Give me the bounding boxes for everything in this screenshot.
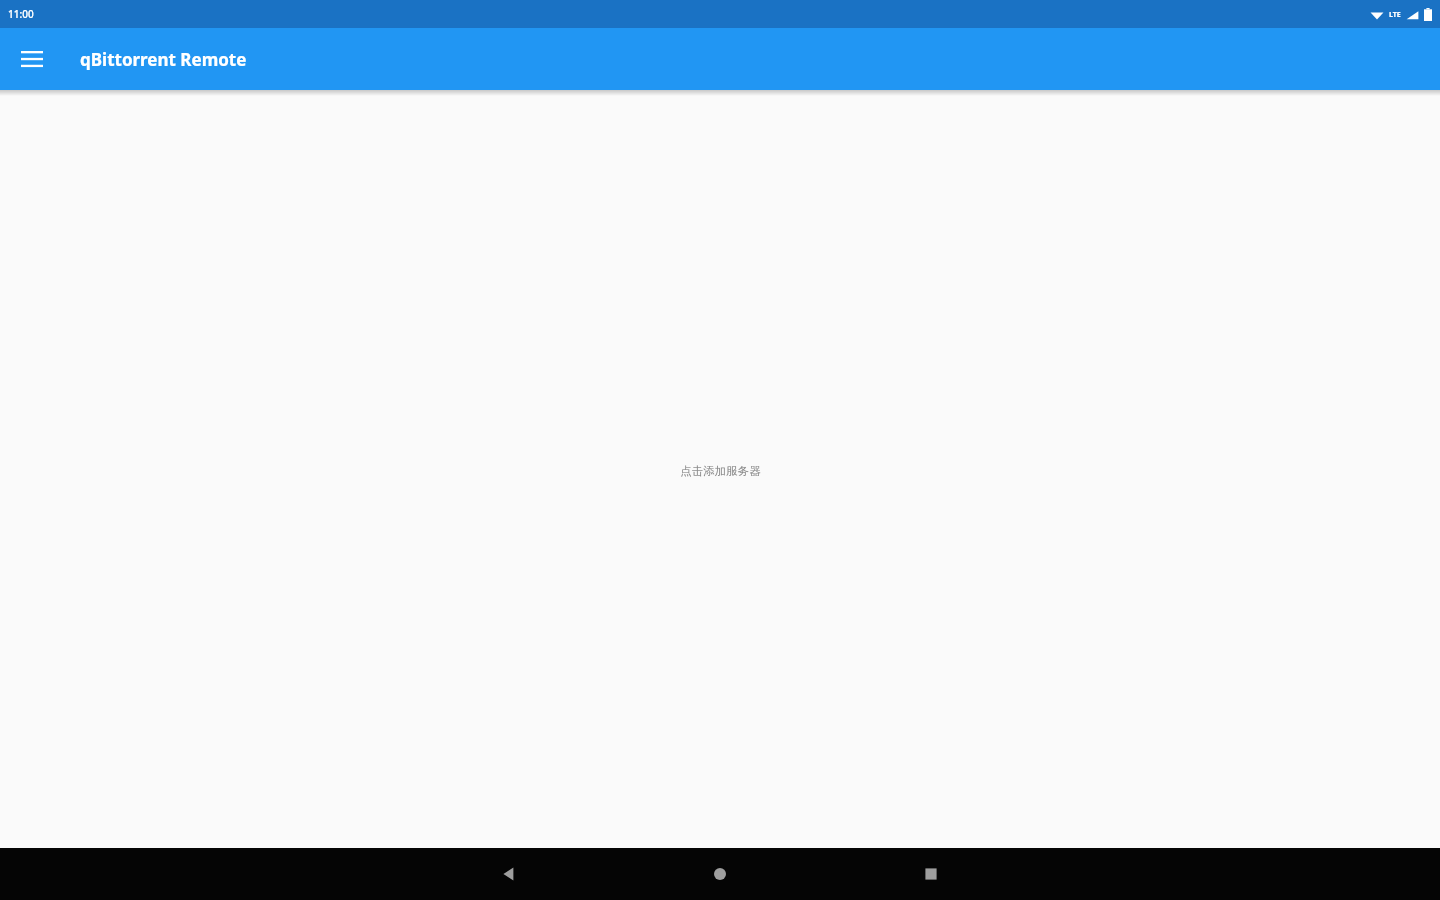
staticText: qBittorrent Remote — [80, 48, 247, 71]
button[interactable]: Recent apps — [907, 850, 955, 898]
button[interactable]: Open navigation menu — [10, 37, 54, 81]
staticText: 11:00 — [8, 7, 34, 21]
staticText: 点击添加服务器 — [680, 464, 761, 478]
staticText: LTE — [1389, 10, 1401, 20]
button[interactable]: Home — [696, 850, 744, 898]
button[interactable]: Back — [485, 850, 533, 898]
